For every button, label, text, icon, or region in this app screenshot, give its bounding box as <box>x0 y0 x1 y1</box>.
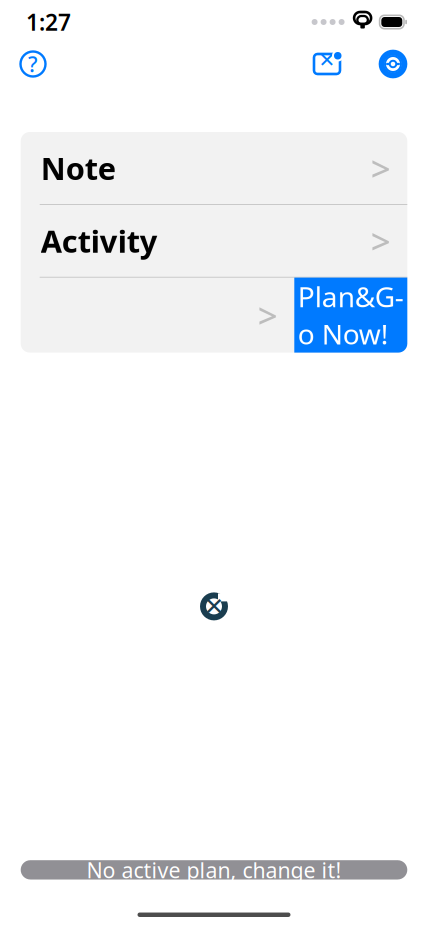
button[interactable]: No active plan, change it! <box>21 860 407 879</box>
staticText: > <box>371 145 391 191</box>
staticText: ✕ <box>204 593 224 620</box>
staticText: Note <box>41 148 116 188</box>
button[interactable]: Help <box>11 42 55 86</box>
button[interactable]: Messages <box>305 42 349 86</box>
staticText: ✕ <box>318 49 335 71</box>
button[interactable]: Note <box>21 132 407 204</box>
button[interactable]: Plan&Go Now! <box>294 278 407 353</box>
button[interactable]: Settings <box>371 42 415 86</box>
staticText: > <box>371 218 391 264</box>
staticText: 1:27 <box>26 7 71 37</box>
staticText: > <box>258 292 278 338</box>
button[interactable]: Activity <box>21 205 407 277</box>
staticText: ? <box>28 50 38 78</box>
staticText: Activity <box>41 220 158 261</box>
staticText: Plan&Go Now! <box>298 278 404 352</box>
button[interactable]: Plan <box>21 278 294 353</box>
staticText: No active plan, change it! <box>86 856 341 884</box>
